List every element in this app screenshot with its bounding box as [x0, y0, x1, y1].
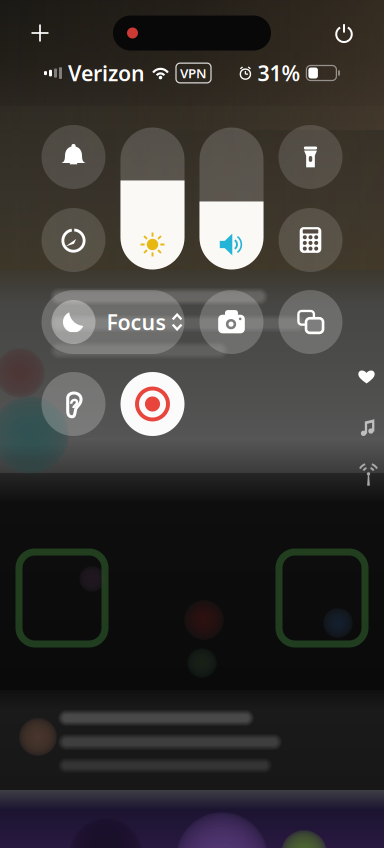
- staticText: Focus: [106, 308, 166, 336]
- button[interactable]: Focus: [41, 290, 184, 354]
- staticText: Verizon: [68, 59, 145, 87]
- button[interactable]: Broadcast: [358, 456, 384, 496]
- button[interactable]: Flashlight: [278, 125, 342, 189]
- button[interactable]: Health: [358, 357, 384, 397]
- button[interactable]: Volume: [199, 127, 263, 269]
- button[interactable]: Music recognition: [358, 408, 384, 448]
- button[interactable]: Power: [322, 11, 366, 55]
- button[interactable]: Screen mirroring: [278, 290, 342, 354]
- button[interactable]: Screen recording: [120, 372, 184, 436]
- button[interactable]: Hearing: [41, 372, 105, 436]
- button[interactable]: Camera: [199, 290, 263, 354]
- button[interactable]: Rotation lock: [41, 208, 105, 272]
- button[interactable]: Brightness: [120, 127, 184, 269]
- staticText: VPN: [180, 64, 207, 82]
- staticText: 31%: [257, 59, 300, 87]
- button[interactable]: Calculator: [278, 208, 342, 272]
- button[interactable]: Add: [18, 11, 62, 55]
- button[interactable]: Silent mode: [41, 125, 105, 189]
